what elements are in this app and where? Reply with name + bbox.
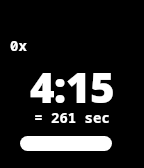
button[interactable]: Stop [20,136,112,151]
staticText: = 261 sec [34,108,110,127]
staticText: 4:15 [30,58,114,115]
button[interactable]: 4:15 [0,58,144,115]
staticText: 0x [10,36,27,55]
button[interactable]: 0x [9,35,28,56]
